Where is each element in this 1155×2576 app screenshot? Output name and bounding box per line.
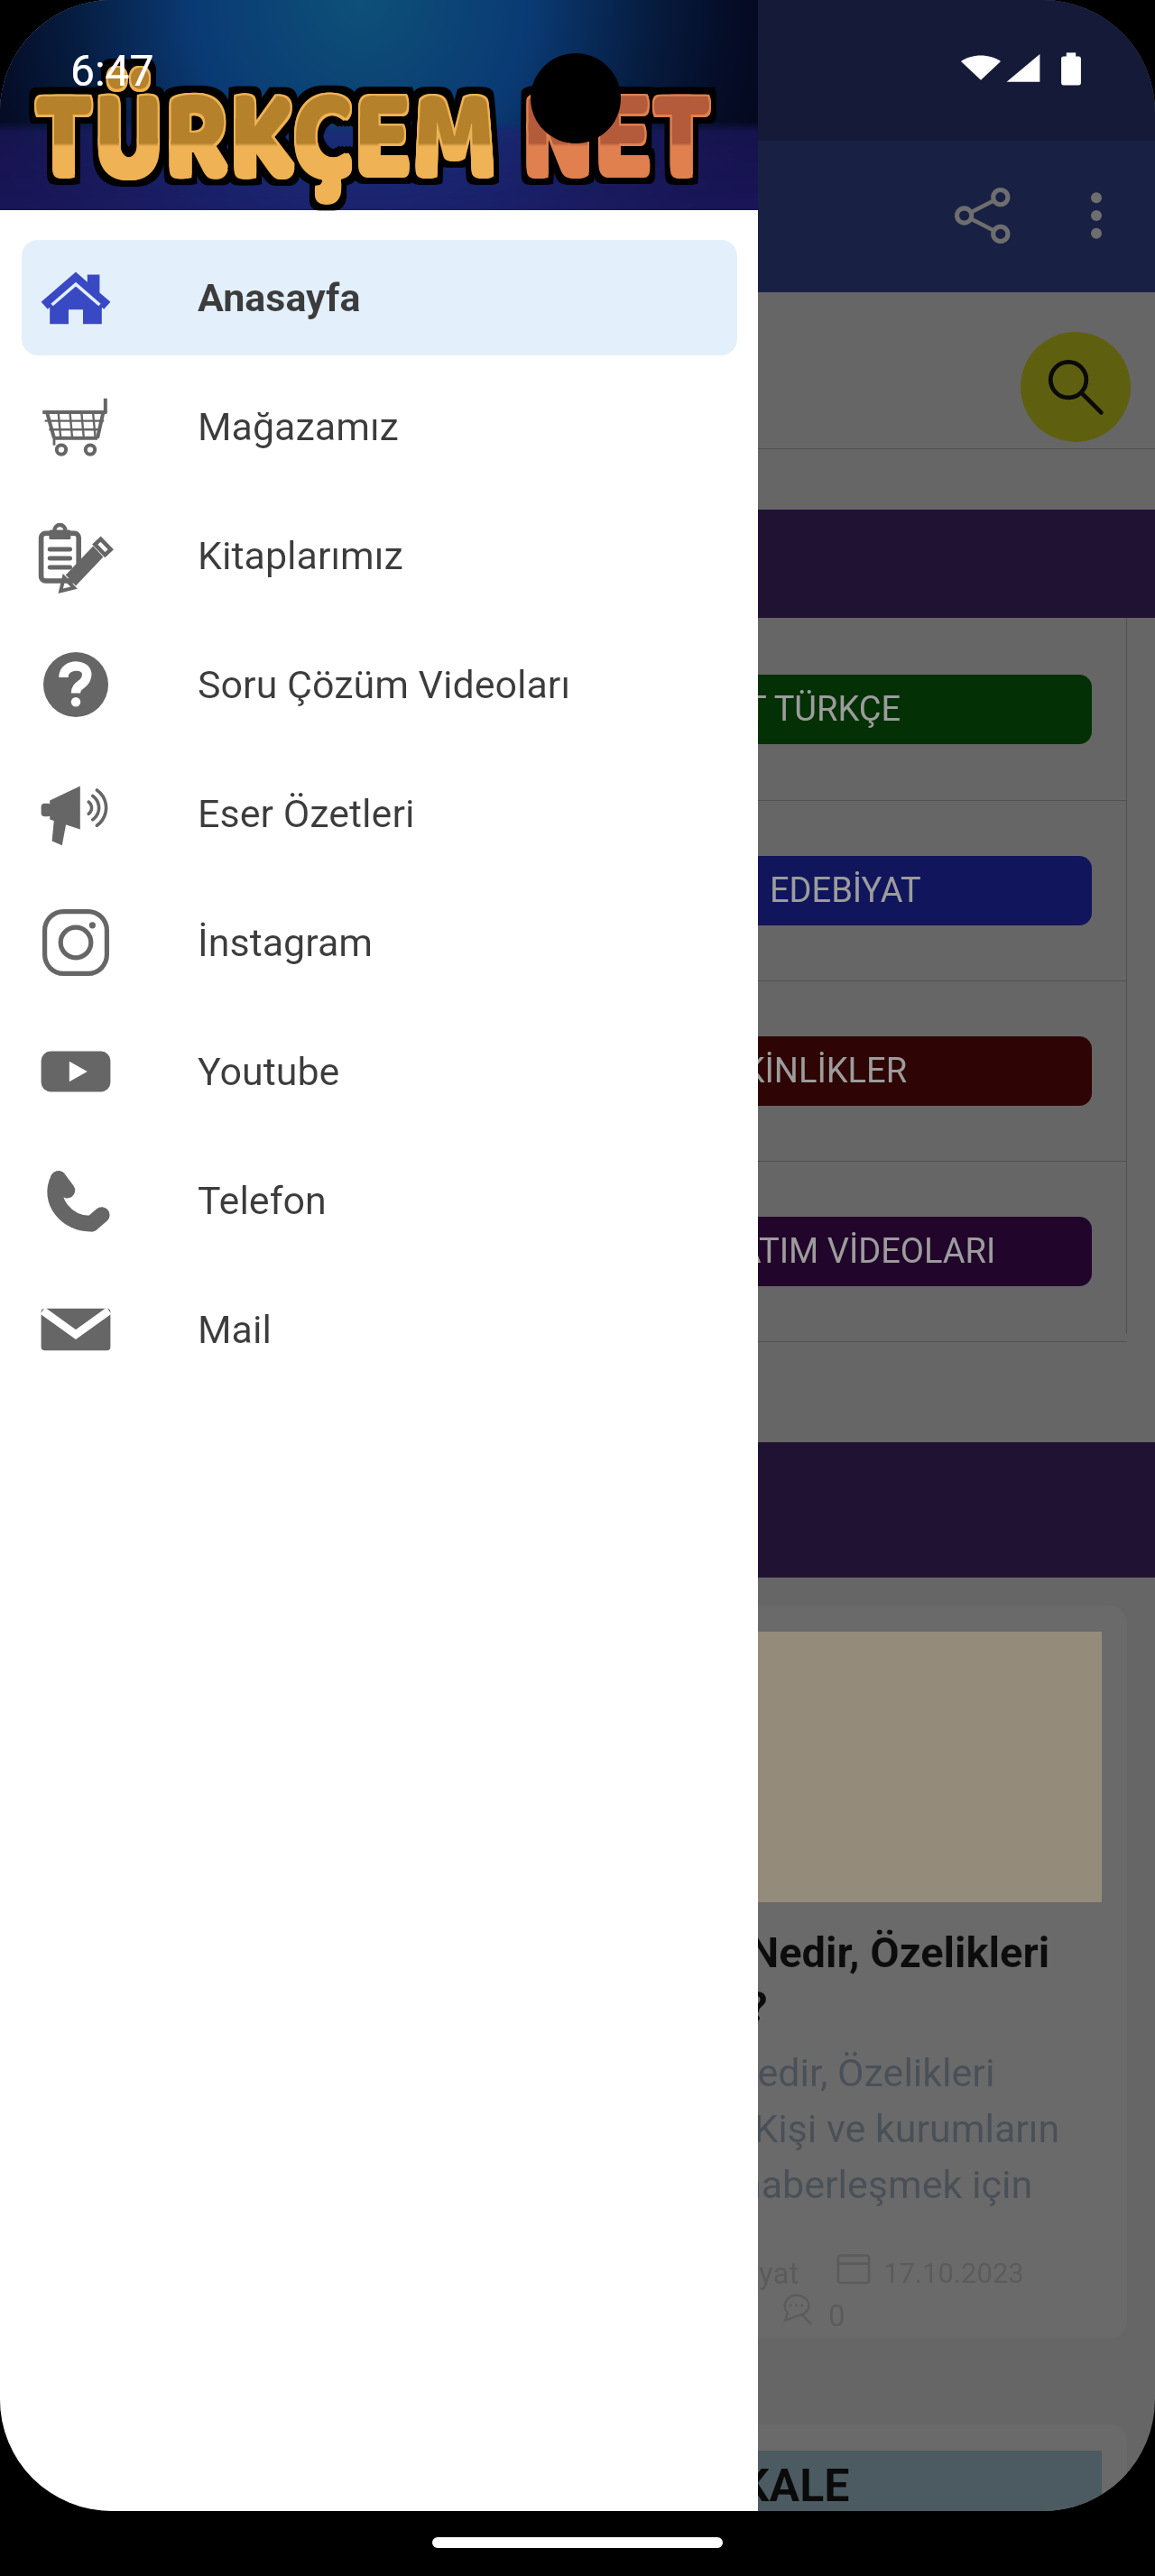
staticText: Anasayfa [198,275,361,320]
staticText: Telefon [198,1178,327,1223]
staticText: Mağazamız [198,404,399,449]
staticText: TÜRKÇEM [34,40,497,248]
staticText: TÜRKÇEM [38,31,501,239]
staticText: NET [525,40,716,248]
staticText: NET [518,40,708,248]
staticText: NET [522,27,712,235]
staticText: TÜRKÇEM [42,40,504,248]
button[interactable]: Soru Çözüm Videoları [22,627,737,742]
staticText: NET [518,27,708,235]
button[interactable]: Mağazamız [22,369,737,484]
staticText: NET TÜRKÇE [702,689,901,730]
staticText: Soru Çözüm Videoları [198,662,571,707]
staticText: TÜRKÇEM [38,44,501,252]
button[interactable]: Mektup Nedir, Özelikleri [570,1605,1127,2339]
staticText: TÜRKÇEM [31,27,494,235]
button[interactable]: More options [1038,157,1155,274]
staticText: MAKALE ÖZELLİKLERİ VE [670,2460,1003,2511]
staticText: NET [518,31,708,239]
staticText: TÜRKÇEM [31,35,494,243]
staticText: İnstagram [198,920,374,965]
staticText: NET [522,31,712,239]
staticText: TÜRKÇEM [38,27,501,235]
staticText: TÜRKÇEM [27,31,490,239]
staticText: TÜRKÇEM [42,31,504,239]
staticText: NET [529,40,719,248]
button[interactable]: EDEBİYAT [47,856,1092,925]
staticText: TÜRKÇEM [36,38,499,246]
staticText: Nelerdir? Kişi ve kurumların [590,2106,1060,2151]
staticText: TÜRKÇEM [31,40,494,248]
staticText: TÜRKÇEM [32,35,495,243]
button[interactable]: Eser Özetleri [22,756,737,871]
staticText: NET [514,31,705,239]
staticText: NET [522,35,712,243]
staticText: TÜRKÇEM [42,35,504,243]
button[interactable]: Kitaplarımız [22,498,737,613]
staticText: NET [514,27,705,235]
button[interactable]: Share [924,157,1041,274]
staticText: NET [523,33,714,241]
staticText: EDEBİYAT [770,870,921,911]
staticText: NET [525,27,716,235]
staticText: Mektup Nedir, Özelikleri [594,1927,1050,1977]
staticText: NET [514,35,705,243]
staticText: Kitaplarımız [198,533,403,578]
staticText: NET [522,38,712,246]
staticText: TÜRKÇEM [34,27,497,235]
button[interactable]: NET TÜRKÇE [47,675,1092,744]
button[interactable]: Anasayfa [22,240,737,355]
staticText: NET [525,35,716,243]
staticText: NET [529,27,719,235]
staticText: TÜRKÇEM [27,35,490,243]
staticText: NET [525,44,716,252]
staticText: Eser Özetleri [198,791,415,836]
staticText: TÜRKÇEM [36,33,499,241]
staticText: birbirine haberleşmek için [590,2162,1033,2207]
staticText: TÜRKÇEM [32,38,495,246]
staticText: TÜRKÇEM [31,44,494,252]
staticText: ETKİNLİKLER [703,1051,908,1091]
staticText: Mektup Nedir, Özelikleri [590,2050,995,2095]
staticText: NET [523,38,714,246]
button[interactable]: Youtube [22,1014,737,1129]
staticText: NET [514,40,705,248]
button[interactable]: ANLATIM VİDEOLARI [47,1217,1092,1286]
staticText: NET [523,35,714,243]
staticText: NET [518,35,708,243]
staticText: Nelerdir? [594,1982,768,2031]
button[interactable]: Mail [22,1272,737,1387]
staticText: TÜRKÇEM [34,33,497,241]
staticText: NET [520,38,710,246]
staticText: TÜRKÇEM [34,31,497,239]
staticText: TÜRKÇEM [31,31,494,239]
staticText: Mail [198,1307,272,1352]
staticText: TÜRKÇEM [42,27,504,235]
staticText: NET [529,44,719,252]
staticText: TÜRKÇEM [38,35,501,243]
staticText: TÜRKÇEM [32,33,495,241]
staticText: ANLATIM VİDEOLARI [673,1231,996,1272]
staticText: TÜRKÇEM [38,40,501,248]
staticText: TÜRKÇEM [34,35,497,243]
staticText: 6:47 [70,45,154,96]
staticText: TÜRKÇEM [34,38,497,246]
staticText: NET [514,44,705,252]
button[interactable]: İnstagram [22,885,737,1000]
button[interactable]: ETKİNLİKLER [47,1036,1092,1106]
staticText: TÜRKÇEM [34,44,497,252]
button[interactable]: Search [1021,332,1131,442]
staticText: TÜRKÇEM [36,35,499,243]
staticText: NET [522,40,712,248]
staticText: NET [518,44,708,252]
staticText: NET [525,31,716,239]
staticText: TÜRKÇEM [27,27,490,235]
staticText: TÜRKÇEM [27,44,490,252]
staticText: TÜRKÇEM [27,40,490,248]
staticText: Edebiyat [686,2256,799,2291]
staticText: 17.10.2023 [883,2257,1024,2289]
staticText: 0 [828,2298,845,2333]
staticText: Youtube [198,1049,340,1094]
staticText: NET [529,35,719,243]
button[interactable]: Telefon [22,1143,737,1258]
